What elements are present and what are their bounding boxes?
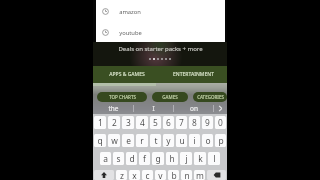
staticText: x [132,170,137,180]
staticText: q [97,135,103,146]
button[interactable]: I [134,103,173,114]
staticText: f [143,153,146,164]
button[interactable]: 7 [176,116,187,129]
staticText: b [171,170,177,180]
staticText: a [103,153,108,164]
button[interactable]: d [126,152,137,165]
button[interactable]: 1 [94,116,106,129]
button[interactable]: youtube [96,22,225,43]
staticText: z [120,170,124,180]
button[interactable]: Backspace [207,170,226,180]
staticText: y [166,135,171,146]
button[interactable]: i [189,134,200,147]
staticText: amazon [119,8,141,16]
button[interactable]: g [152,152,164,165]
button[interactable]: 3 [122,116,134,129]
button[interactable]: APPS & GAMES [93,66,160,83]
button[interactable]: j [180,152,192,165]
staticText: TOP CHARTS [109,94,136,100]
button[interactable]: Shift [94,170,114,180]
button[interactable]: m [194,170,205,180]
staticText: c [145,170,150,180]
button[interactable]: 0 [215,116,226,129]
staticText: o [205,135,211,146]
staticText: 4 [140,117,145,128]
button[interactable]: l [208,152,220,165]
button[interactable]: 2 [108,116,120,129]
staticText: Deals on starter packs + more [118,45,203,53]
button[interactable]: e [122,134,134,147]
button[interactable]: 4 [136,116,148,129]
staticText: t [154,135,158,146]
staticText: 9 [205,117,210,128]
staticText: s [116,153,121,164]
staticText: e [126,135,131,146]
staticText: v [158,170,163,180]
button[interactable]: y [163,134,174,147]
staticText: I [152,104,155,113]
staticText: 0 [218,117,223,128]
staticText: the [108,104,119,113]
staticText: APPS & GAMES [109,71,145,78]
button[interactable]: x [129,170,140,180]
button[interactable]: v [155,170,166,180]
staticText: u [179,135,185,146]
staticText: 7 [179,117,184,128]
staticText: ENTERTAINMENT [173,71,214,78]
button[interactable]: TOP CHARTS [97,92,147,102]
button[interactable]: n [181,170,192,180]
staticText: GAMES [162,94,178,100]
staticText: k [198,153,203,164]
staticText: j [185,153,188,164]
button[interactable]: GAMES [152,92,188,102]
staticText: 3 [126,117,131,128]
button[interactable]: 9 [202,116,213,129]
staticText: r [140,135,144,146]
staticText: i [193,135,196,146]
staticText: 2 [112,117,117,128]
staticText: youtube [119,29,142,37]
button[interactable]: f [139,152,150,165]
button[interactable]: More suggestions [214,103,227,114]
staticText: h [169,153,175,164]
button[interactable]: the [93,103,133,114]
staticText: 6 [166,117,171,128]
button[interactable]: 5 [150,116,161,129]
button[interactable]: q [94,134,106,147]
staticText: d [129,153,135,164]
button[interactable]: z [116,170,127,180]
button[interactable]: on [174,103,213,114]
button[interactable]: a [100,152,111,165]
staticText: on [190,104,198,113]
button[interactable]: c [142,170,153,180]
button[interactable]: CATEGORIES [193,92,227,102]
button[interactable]: r [136,134,148,147]
staticText: n [184,170,190,180]
button[interactable]: 6 [163,116,174,129]
button[interactable]: p [215,134,226,147]
button[interactable]: ENTERTAINMENT [160,66,227,83]
staticText: 5 [153,117,158,128]
button[interactable]: k [194,152,206,165]
button[interactable]: amazon [96,1,225,22]
staticText: p [218,135,224,146]
staticText: w [111,135,118,146]
staticText: 8 [192,117,197,128]
button[interactable]: h [166,152,178,165]
button[interactable]: w [108,134,120,147]
staticText: m [196,170,204,180]
button[interactable]: 8 [189,116,200,129]
button[interactable]: t [150,134,161,147]
staticText: l [213,153,216,164]
button[interactable]: b [168,170,179,180]
button[interactable]: s [113,152,124,165]
staticText: CATEGORIES [197,94,224,100]
button[interactable]: u [176,134,187,147]
staticText: 1 [98,117,103,128]
button[interactable]: o [202,134,213,147]
staticText: g [155,153,161,164]
